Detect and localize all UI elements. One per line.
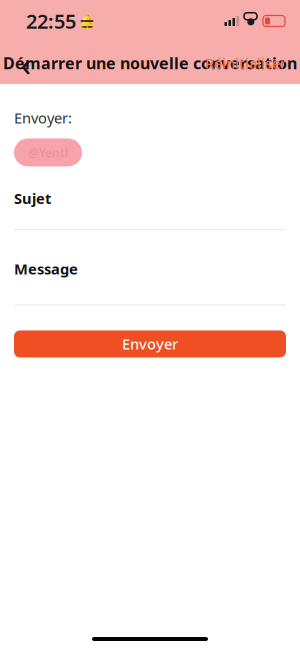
staticText: Message bbox=[14, 259, 78, 278]
staticText: Démarrer une nouvelle conversation bbox=[3, 52, 297, 74]
staticText: Réinitialiser bbox=[205, 53, 286, 73]
button[interactable]: @Yentl bbox=[14, 138, 82, 166]
staticText: ● bbox=[246, 16, 254, 26]
staticText: Sujet bbox=[14, 188, 51, 208]
staticText: Envoyer: bbox=[14, 108, 72, 127]
staticText: 22:55 bbox=[26, 8, 76, 34]
button[interactable]: Envoyer bbox=[14, 330, 286, 357]
staticText: @Yentl bbox=[28, 144, 68, 160]
staticText: 🔔 bbox=[78, 13, 95, 29]
button[interactable]: Réinitialiser bbox=[197, 43, 294, 83]
button[interactable] bbox=[14, 208, 286, 230]
staticText: ‹ bbox=[20, 40, 31, 86]
staticText: Envoyer bbox=[122, 334, 178, 354]
button[interactable]: Back bbox=[6, 43, 46, 83]
